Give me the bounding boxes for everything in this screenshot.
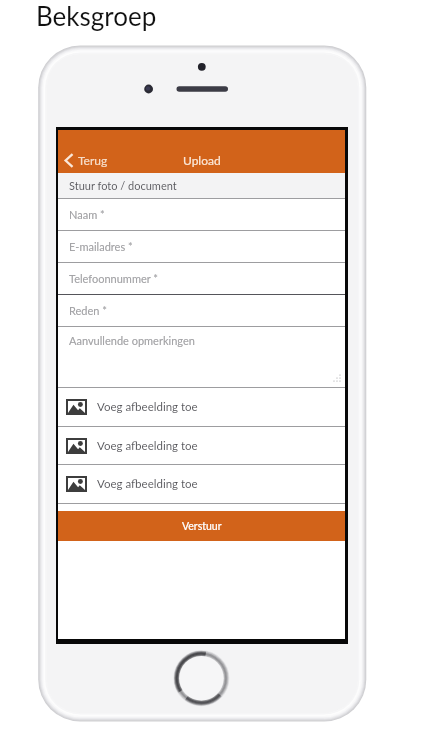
staticText: Voeg afbeelding toe <box>97 477 198 491</box>
button[interactable]: E-mailadres * <box>58 231 345 262</box>
staticText: Telefoonnummer * <box>69 272 159 285</box>
staticText: Verstuur <box>182 520 222 533</box>
button[interactable]: Naam * <box>58 199 345 230</box>
staticText: Voeg afbeelding toe <box>97 439 198 453</box>
button[interactable]: Voeg afbeelding toe <box>58 388 345 426</box>
staticText: Aanvullende opmerkingen <box>69 334 195 347</box>
staticText: Naam * <box>69 208 105 221</box>
staticText: Upload <box>183 153 221 167</box>
button[interactable]: Voeg afbeelding toe <box>58 427 345 464</box>
staticText: E-mailadres * <box>69 240 133 253</box>
staticText: Reden * <box>69 304 107 317</box>
staticText: Stuur foto / document <box>69 179 177 192</box>
other: Voeg afbeelding toe <box>66 438 87 454</box>
staticText: Voeg afbeelding toe <box>97 400 198 414</box>
button[interactable]: Reden * <box>58 295 345 326</box>
button[interactable]: Verstuur <box>58 511 345 541</box>
button[interactable]: Telefoonnummer * <box>58 263 345 294</box>
button[interactable]: Voeg afbeelding toe <box>58 465 345 503</box>
button[interactable]: Terug <box>60 147 108 173</box>
other: Voeg afbeelding toe <box>66 399 87 415</box>
staticText: Beksgroep <box>36 0 157 31</box>
staticText: Terug <box>78 153 108 167</box>
other: Voeg afbeelding toe <box>66 476 87 492</box>
